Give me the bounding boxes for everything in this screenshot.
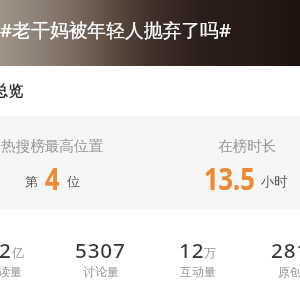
- staticText: 原创量: [278, 264, 300, 279]
- staticText: 位: [67, 173, 80, 189]
- staticText: 12: [179, 236, 205, 264]
- staticText: 1.2: [0, 236, 12, 264]
- staticText: 阅读量: [0, 264, 22, 279]
- staticText: 互动量: [180, 264, 216, 279]
- staticText: 万: [204, 245, 216, 260]
- staticText: 小时: [261, 173, 288, 190]
- staticText: 热搜榜最高位置: [1, 137, 104, 155]
- staticText: #老干妈被年轻人抛弃了吗#: [0, 17, 232, 43]
- button[interactable]: [0, 0, 300, 66]
- staticText: 13.5: [204, 157, 255, 199]
- staticText: 总览: [0, 82, 23, 101]
- staticText: 4: [45, 157, 60, 199]
- staticText: 2813: [271, 236, 300, 264]
- staticText: 亿: [12, 245, 24, 260]
- staticText: 5307: [75, 236, 126, 264]
- staticText: 第: [25, 173, 38, 189]
- staticText: 在榜时长: [218, 137, 277, 155]
- staticText: 讨论量: [83, 264, 119, 279]
